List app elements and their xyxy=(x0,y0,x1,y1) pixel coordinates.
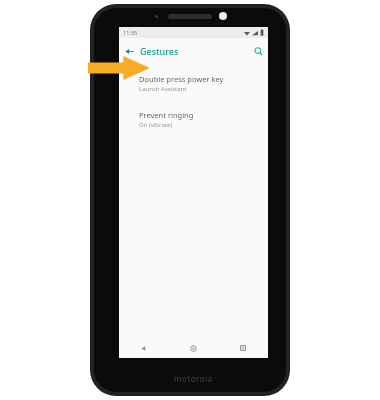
button[interactable]: Recent apps xyxy=(218,338,268,358)
staticText: On (vibrate) xyxy=(139,121,173,129)
button[interactable]: Prevent ringing xyxy=(119,108,268,131)
staticText: Gestures xyxy=(140,45,179,57)
button[interactable]: Home xyxy=(168,338,218,358)
staticText: motorola xyxy=(174,373,213,384)
button[interactable]: Double press power key xyxy=(119,72,268,95)
button[interactable]: Back xyxy=(119,338,168,358)
staticText: Launch Assistant xyxy=(139,85,187,93)
staticText: Double press power key xyxy=(139,74,224,84)
button[interactable]: Navigate up xyxy=(120,42,138,60)
button[interactable]: Search xyxy=(249,42,267,60)
staticText: 11:35 xyxy=(123,29,138,36)
staticText: Prevent ringing xyxy=(139,110,194,120)
